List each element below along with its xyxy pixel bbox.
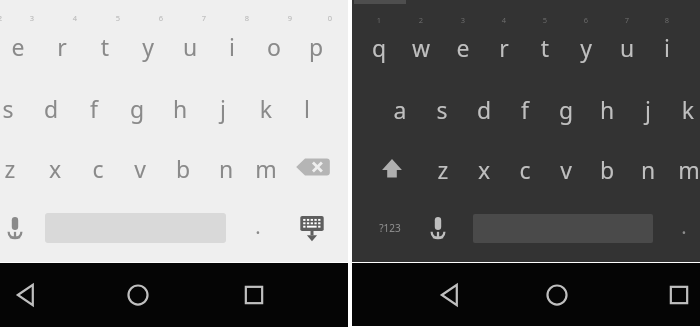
staticText: m — [669, 154, 700, 194]
button[interactable]: j — [628, 88, 668, 128]
staticText: k — [668, 94, 700, 134]
button[interactable]: o — [254, 25, 294, 65]
button[interactable]: Voice input — [0, 212, 31, 244]
staticText: 2 — [409, 15, 433, 33]
button[interactable]: f — [74, 87, 114, 127]
button[interactable]: l — [287, 87, 327, 127]
staticText: 5 — [106, 13, 130, 31]
button[interactable]: h — [587, 88, 627, 128]
button[interactable]: Voice input — [422, 212, 454, 244]
staticText: v — [120, 153, 160, 193]
button[interactable]: u — [170, 25, 210, 65]
button[interactable]: k — [246, 87, 286, 127]
button[interactable]: g — [117, 87, 157, 127]
staticText: s — [0, 93, 28, 133]
staticText: 4 — [63, 13, 87, 31]
staticText: f — [505, 94, 545, 134]
button[interactable]: g — [546, 88, 586, 128]
staticText: 1 — [367, 15, 391, 33]
button[interactable]: p — [296, 25, 336, 65]
staticText: h — [160, 93, 200, 133]
button[interactable]: Shift — [376, 152, 408, 184]
staticText: n — [628, 154, 668, 194]
button[interactable]: q — [359, 26, 399, 66]
button[interactable]: w — [401, 26, 441, 66]
button[interactable]: k — [668, 88, 700, 128]
staticText: j — [203, 93, 243, 133]
button[interactable]: n — [628, 148, 668, 188]
staticText: i — [212, 31, 252, 71]
button[interactable]: e — [443, 26, 483, 66]
button[interactable]: Period — [238, 205, 278, 245]
staticText: a — [380, 94, 420, 134]
staticText: 9 — [278, 13, 302, 31]
button[interactable]: Back — [433, 278, 467, 312]
button[interactable]: y — [566, 26, 606, 66]
button[interactable]: c — [78, 147, 118, 187]
button[interactable]: m — [669, 148, 700, 188]
button[interactable]: v — [546, 148, 586, 188]
button[interactable]: x — [35, 147, 75, 187]
button[interactable]: v — [120, 147, 160, 187]
button[interactable]: d — [31, 87, 71, 127]
button[interactable]: i — [647, 26, 687, 66]
button[interactable]: a — [380, 88, 420, 128]
button[interactable]: z — [423, 148, 463, 188]
staticText: 8 — [235, 13, 259, 31]
button[interactable]: u — [607, 26, 647, 66]
staticText: o — [254, 31, 294, 71]
button[interactable]: r — [484, 26, 524, 66]
button[interactable]: t — [525, 26, 565, 66]
staticText: v — [546, 154, 586, 194]
button[interactable]: e — [0, 25, 38, 65]
button[interactable]: f — [505, 88, 545, 128]
button[interactable]: Back — [9, 278, 43, 312]
button[interactable]: s — [422, 88, 462, 128]
button[interactable]: d — [464, 88, 504, 128]
staticText: j — [628, 94, 668, 134]
button[interactable]: j — [203, 87, 243, 127]
staticText: 7 — [192, 13, 216, 31]
button[interactable]: Delete — [293, 153, 333, 181]
button[interactable]: Recent apps — [237, 278, 271, 312]
staticText: e — [443, 32, 483, 72]
button[interactable]: x — [464, 148, 504, 188]
button[interactable]: Recent apps — [662, 278, 696, 312]
button[interactable]: i — [212, 25, 252, 65]
staticText: t — [85, 31, 125, 71]
staticText: x — [35, 153, 75, 193]
button[interactable]: Period — [664, 205, 700, 245]
staticText: r — [42, 31, 82, 71]
button[interactable]: b — [163, 147, 203, 187]
staticText: w — [401, 32, 441, 72]
staticText: 3 — [20, 13, 44, 31]
button[interactable]: m — [246, 147, 286, 187]
button[interactable]: r — [42, 25, 82, 65]
staticText: 5 — [533, 15, 557, 33]
button[interactable]: Home — [121, 278, 155, 312]
button[interactable]: b — [587, 148, 627, 188]
button[interactable]: z — [0, 147, 30, 187]
staticText: b — [163, 153, 203, 193]
staticText: n — [206, 153, 246, 193]
button[interactable]: Home — [540, 278, 574, 312]
button[interactable]: s — [0, 87, 28, 127]
button[interactable]: c — [505, 148, 545, 188]
button[interactable]: Change keyboard — [297, 213, 327, 243]
staticText: d — [464, 94, 504, 134]
button[interactable]: n — [206, 147, 246, 187]
staticText: g — [546, 94, 586, 134]
staticText: z — [0, 153, 30, 193]
button[interactable]: Symbols — [370, 216, 410, 240]
staticText: b — [587, 154, 627, 194]
staticText: q — [359, 32, 399, 72]
staticText: r — [484, 32, 524, 72]
button[interactable]: y — [128, 25, 168, 65]
button[interactable]: h — [160, 87, 200, 127]
staticText: c — [505, 154, 545, 194]
staticText: 6 — [574, 15, 598, 33]
button[interactable]: t — [85, 25, 125, 65]
staticText: i — [647, 32, 687, 72]
